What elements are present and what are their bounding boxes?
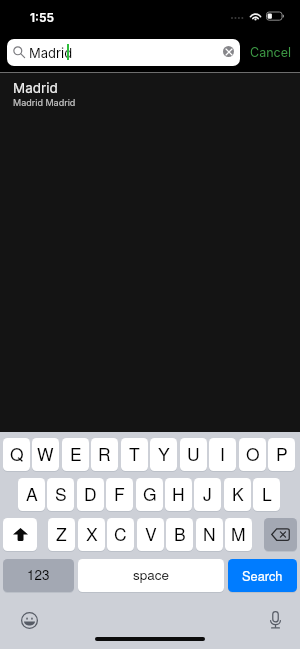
button[interactable]: C — [107, 518, 134, 551]
staticText: K — [232, 481, 244, 506]
staticText: A — [26, 481, 38, 506]
button[interactable]: Madrid — [0, 73, 300, 117]
button[interactable]: Madrid — [7, 39, 240, 66]
button[interactable]: E — [62, 438, 89, 471]
staticText: I — [220, 441, 225, 466]
staticText: space — [133, 565, 170, 584]
button[interactable]: D — [77, 478, 104, 511]
staticText: Madrid — [29, 45, 73, 61]
staticText: Y — [158, 441, 170, 466]
button[interactable]: Backspace — [264, 518, 297, 551]
button[interactable]: O — [239, 438, 266, 471]
staticText: W — [37, 441, 54, 466]
staticText: Q — [10, 441, 24, 466]
staticText: B — [174, 521, 186, 546]
button[interactable]: U — [180, 438, 207, 471]
button[interactable]: N — [196, 518, 223, 551]
staticText: L — [262, 481, 272, 506]
button[interactable]: Shift — [3, 518, 37, 551]
button[interactable]: Search — [228, 559, 297, 592]
staticText: Madrid Madrid — [13, 97, 76, 108]
button[interactable]: J — [194, 478, 221, 511]
staticText: E — [70, 441, 82, 466]
button[interactable]: space — [78, 559, 224, 592]
button[interactable]: M — [225, 518, 252, 551]
button[interactable]: Z — [48, 518, 75, 551]
button[interactable]: Y — [150, 438, 177, 471]
button[interactable]: Q — [3, 438, 30, 471]
button[interactable]: Emoji keyboard — [16, 607, 42, 633]
button[interactable]: R — [91, 438, 118, 471]
staticText: S — [55, 481, 67, 506]
staticText: T — [129, 441, 140, 466]
staticText: C — [114, 521, 127, 546]
staticText: Z — [56, 521, 67, 546]
staticText: 123 — [27, 565, 50, 584]
staticText: H — [172, 481, 185, 506]
staticText: Search — [242, 566, 283, 584]
button[interactable]: Clear text — [223, 46, 234, 57]
staticText: 1:55 — [30, 10, 54, 25]
button[interactable]: V — [137, 518, 164, 551]
button[interactable]: S — [47, 478, 74, 511]
staticText: J — [203, 481, 212, 506]
button[interactable]: P — [268, 438, 295, 471]
staticText: V — [145, 521, 157, 546]
staticText: R — [98, 441, 111, 466]
button[interactable]: I — [209, 438, 236, 471]
button[interactable]: H — [165, 478, 192, 511]
staticText: G — [143, 481, 157, 506]
button[interactable]: B — [166, 518, 193, 551]
button[interactable]: W — [32, 438, 59, 471]
staticText: X — [86, 521, 98, 546]
button[interactable]: T — [121, 438, 148, 471]
button[interactable]: L — [253, 478, 280, 511]
staticText: M — [231, 521, 246, 546]
button[interactable]: X — [78, 518, 105, 551]
staticText: O — [246, 441, 260, 466]
button[interactable]: Dictate — [262, 607, 288, 633]
button[interactable]: K — [224, 478, 251, 511]
button[interactable]: F — [106, 478, 133, 511]
staticText: F — [114, 481, 125, 506]
button[interactable]: 123 — [3, 559, 74, 592]
staticText: U — [187, 441, 200, 466]
button[interactable]: A — [18, 478, 45, 511]
staticText: Cancel — [250, 45, 291, 60]
button[interactable]: G — [136, 478, 163, 511]
staticText: N — [203, 521, 216, 546]
staticText: P — [276, 441, 288, 466]
staticText: D — [84, 481, 97, 506]
button[interactable]: Cancel — [250, 39, 294, 66]
staticText: Madrid — [13, 80, 58, 96]
